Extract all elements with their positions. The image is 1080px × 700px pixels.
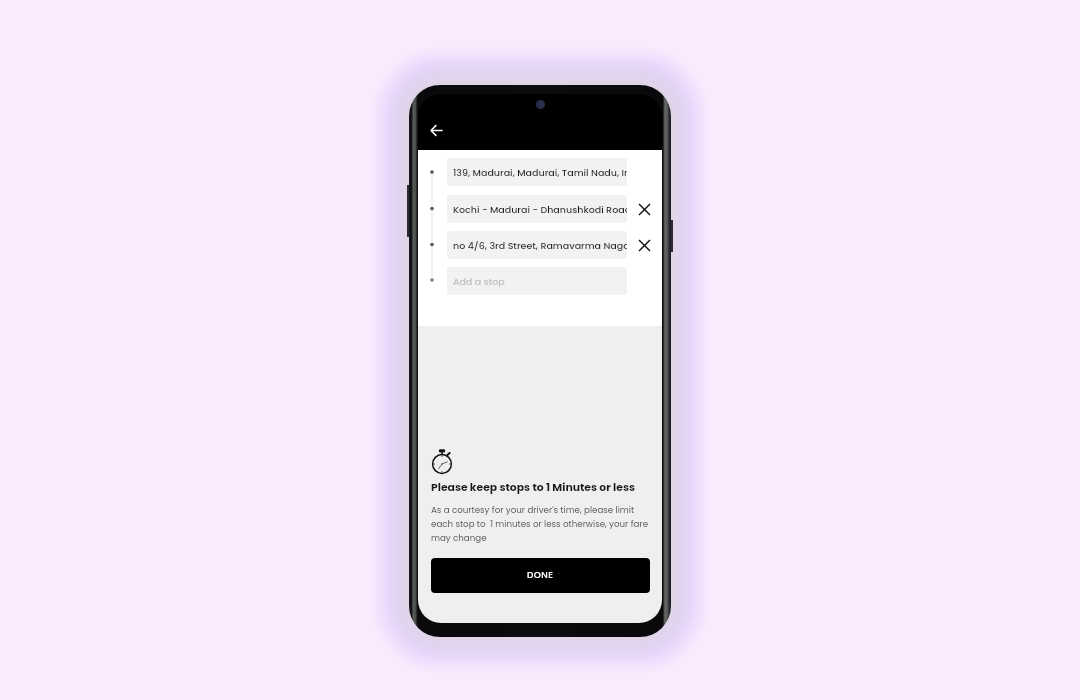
button[interactable]: DONE: [431, 558, 650, 593]
staticText: DONE: [527, 569, 554, 582]
staticText: Add a stop: [453, 275, 505, 288]
staticText: 139, Madurai, Madurai, Tamil Nadu, India: [453, 166, 627, 179]
button[interactable]: Back: [425, 119, 447, 141]
button[interactable]: no 4/6, 3rd Street, Ramavarma Nagar, Koc…: [447, 231, 627, 259]
staticText: no 4/6, 3rd Street, Ramavarma Nagar, Koc…: [453, 239, 627, 252]
button[interactable]: Add a stop: [447, 267, 627, 295]
button[interactable]: 139, Madurai, Madurai, Tamil Nadu, India: [447, 158, 627, 186]
button[interactable]: Kochi - Madurai - Dhanushkodi Road, Tami…: [447, 195, 627, 223]
button[interactable]: Remove stop: [631, 195, 658, 223]
staticText: As a courtesy for your driver's time, pl…: [431, 504, 650, 544]
button[interactable]: Remove stop: [631, 231, 658, 259]
staticText: Kochi - Madurai - Dhanushkodi Road, Tami…: [453, 203, 627, 216]
staticText: Please keep stops to 1 Minutes or less: [431, 480, 635, 495]
